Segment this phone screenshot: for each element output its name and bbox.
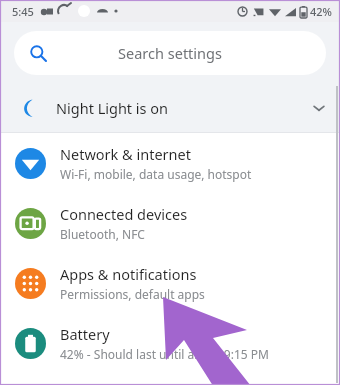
button[interactable]: Apps & notifications (0, 253, 340, 313)
staticText: Search settings (118, 43, 222, 63)
staticText: Connected devices (60, 204, 188, 224)
staticText: Bluetooth, NFC (60, 226, 145, 242)
button[interactable]: Search (14, 31, 326, 75)
staticText: 42% - Should last until about 9:15 PM (60, 346, 269, 362)
staticText: Wi-Fi, mobile, data usage, hotspot (60, 166, 252, 182)
staticText: Apps & notifications (60, 264, 197, 284)
staticText: Network & internet (60, 144, 191, 164)
staticText: 42% (310, 4, 332, 19)
other: Search (30, 45, 47, 62)
button[interactable]: Connected devices (0, 193, 340, 253)
staticText: 5:45 (12, 4, 34, 19)
button[interactable]: Battery (0, 313, 340, 373)
button[interactable]: Network & internet (0, 133, 340, 193)
button[interactable]: Night Light is on (0, 84, 340, 132)
staticText: Night Light is on (56, 98, 169, 118)
staticText: Battery (60, 324, 110, 344)
staticText: Permissions, default apps (60, 286, 205, 302)
